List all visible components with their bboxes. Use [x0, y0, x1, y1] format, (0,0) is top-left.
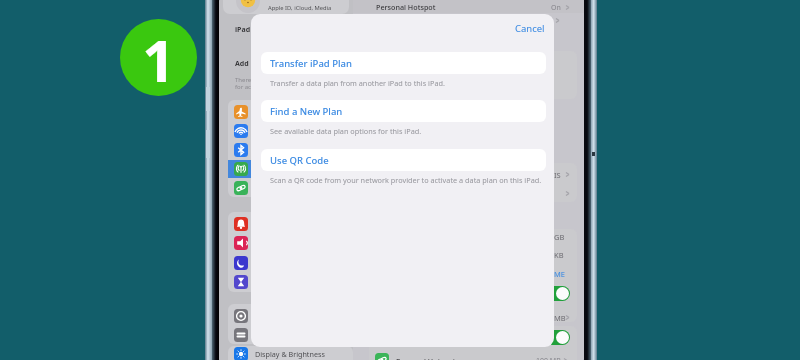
- staticText: Apple ID, iCloud, Media: [268, 4, 332, 12]
- button[interactable]: Cancel: [515, 22, 545, 35]
- staticText: GB: [554, 232, 565, 242]
- staticText: See available data plan options for this…: [270, 126, 422, 136]
- button[interactable]: [369, 163, 577, 202]
- button[interactable]: [234, 256, 248, 270]
- staticText: 100 MB: [536, 356, 561, 360]
- button[interactable]: Transfer iPad Plan: [261, 52, 546, 74]
- staticText: IS: [554, 170, 561, 180]
- button[interactable]: [234, 124, 248, 138]
- staticText: MB: [554, 313, 566, 323]
- staticText: Personal Hotspot: [396, 356, 456, 360]
- button[interactable]: [369, 229, 577, 322]
- button[interactable]: [234, 217, 248, 231]
- staticText: There for ac: [235, 76, 252, 91]
- button[interactable]: [234, 236, 248, 250]
- button[interactable]: [234, 162, 248, 176]
- button[interactable]: [234, 275, 248, 289]
- staticText: Find a New Plan: [270, 105, 343, 118]
- button[interactable]: [234, 328, 248, 342]
- staticText: Add: [235, 59, 249, 69]
- button[interactable]: [369, 326, 577, 360]
- staticText: Transfer a data plan from another iPad t…: [270, 78, 445, 88]
- button[interactable]: Use QR Code: [261, 149, 546, 171]
- staticText: Use QR Code: [270, 154, 329, 167]
- staticText: iPad: [235, 25, 251, 35]
- button[interactable]: [234, 143, 248, 157]
- staticText: 1: [142, 21, 175, 96]
- staticText: Scan a QR code from your network provide…: [270, 175, 542, 185]
- button[interactable]: [234, 105, 248, 119]
- button[interactable]: [544, 286, 570, 301]
- staticText: Cancel: [515, 22, 545, 35]
- button[interactable]: [369, 51, 577, 99]
- button[interactable]: [228, 160, 353, 178]
- staticText: Transfer iPad Plan: [270, 57, 352, 70]
- button[interactable]: [234, 347, 248, 360]
- button[interactable]: [234, 181, 248, 195]
- button[interactable]: Step 1: [120, 19, 197, 96]
- button[interactable]: Find a New Plan: [261, 100, 546, 122]
- button[interactable]: [375, 353, 389, 360]
- staticText: ME: [554, 269, 565, 279]
- button[interactable]: [544, 330, 570, 345]
- staticText: Personal Hotspot: [376, 2, 436, 12]
- staticText: Display & Brightness: [255, 349, 325, 359]
- staticText: KB: [554, 250, 564, 260]
- staticText: On: [551, 3, 561, 13]
- button[interactable]: [234, 309, 248, 323]
